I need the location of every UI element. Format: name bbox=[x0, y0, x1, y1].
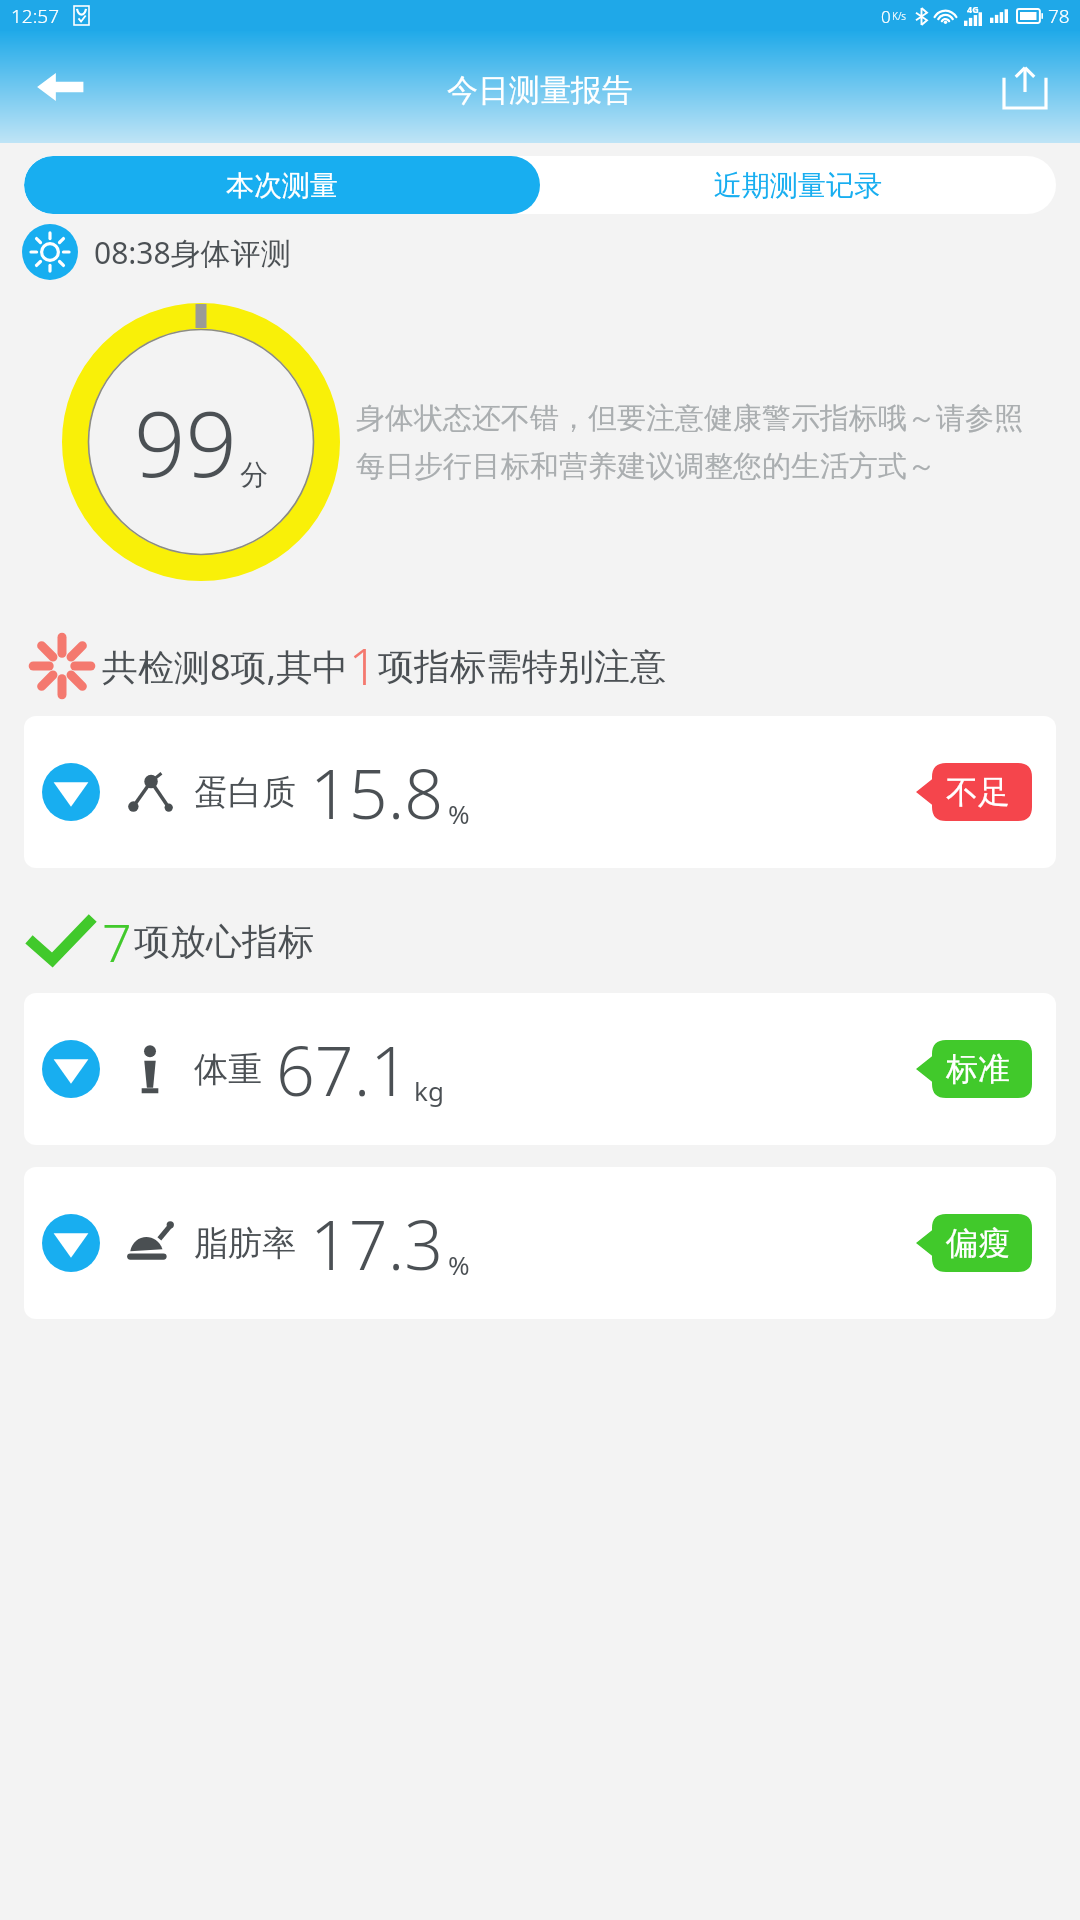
staticText: 17.3 bbox=[310, 1197, 444, 1290]
staticText: kg bbox=[414, 1073, 444, 1108]
staticText: 0 bbox=[881, 5, 891, 28]
staticText: 78 bbox=[1048, 3, 1070, 29]
staticText: 08:38身体评测 bbox=[94, 232, 291, 273]
staticText: 蛋白质 bbox=[194, 771, 296, 814]
staticText: % bbox=[448, 1247, 470, 1282]
button[interactable]: Expand bbox=[24, 1167, 1056, 1319]
staticText: 分 bbox=[240, 457, 268, 492]
staticText: 标准 bbox=[946, 1049, 1010, 1089]
staticText: 7 bbox=[102, 906, 132, 977]
staticText: 近期测量记录 bbox=[714, 168, 882, 203]
button[interactable]: 本次测量 bbox=[24, 156, 540, 214]
other: Expand bbox=[42, 1040, 100, 1098]
staticText: 67.1 bbox=[276, 1023, 410, 1116]
staticText: 不足 bbox=[946, 772, 1010, 812]
staticText: K/s bbox=[892, 9, 907, 23]
staticText: 15.8 bbox=[310, 746, 444, 839]
staticText: 项放心指标 bbox=[134, 919, 314, 964]
other: Expand bbox=[42, 1214, 100, 1272]
button[interactable]: Share bbox=[1000, 62, 1050, 112]
button[interactable]: 近期测量记录 bbox=[540, 156, 1056, 214]
staticText: 4G bbox=[967, 3, 979, 15]
button[interactable]: Expand bbox=[24, 993, 1056, 1145]
staticText: 偏瘦 bbox=[946, 1223, 1010, 1263]
staticText: 共检测8项,其中 bbox=[102, 642, 349, 691]
staticText: 体重 bbox=[194, 1048, 262, 1091]
other: Expand bbox=[42, 763, 100, 821]
staticText: 身体状态还不错，但要注意健康警示指标哦～请参照每日步行目标和营养建议调整您的生活… bbox=[356, 400, 1050, 484]
staticText: 项指标需特别注意 bbox=[378, 644, 666, 689]
staticText: 1 bbox=[349, 632, 378, 700]
staticText: 本次测量 bbox=[226, 168, 338, 203]
staticText: 脂肪率 bbox=[194, 1222, 296, 1265]
staticText: 99 bbox=[134, 381, 237, 504]
button[interactable]: Back bbox=[34, 61, 86, 113]
staticText: % bbox=[448, 796, 470, 831]
staticText: 今日测量报告 bbox=[447, 71, 633, 110]
button[interactable]: Expand bbox=[24, 716, 1056, 868]
staticText: 12:57 bbox=[11, 3, 60, 29]
